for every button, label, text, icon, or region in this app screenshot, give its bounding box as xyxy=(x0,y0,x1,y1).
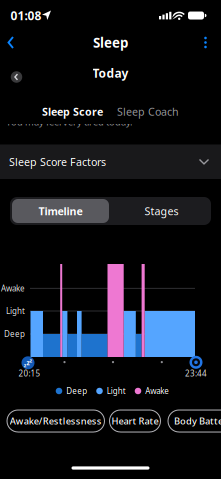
staticText: 23:44 xyxy=(185,368,207,379)
staticText: Sleep Coach xyxy=(117,104,179,119)
staticText: Deep xyxy=(4,329,25,339)
staticText: Timeline xyxy=(38,204,82,218)
staticText: 20:15 xyxy=(18,368,40,379)
button[interactable]: Previous day xyxy=(11,71,22,83)
staticText: Light xyxy=(107,386,126,396)
staticText: z xyxy=(24,362,27,369)
staticText: Awake xyxy=(145,386,169,396)
staticText: Sleep Score xyxy=(42,104,103,119)
staticText: Sleep xyxy=(93,34,128,51)
button[interactable]: Sleep Score Factors xyxy=(0,144,221,179)
button[interactable]: Awake/Restlessness xyxy=(7,410,104,432)
staticText: Awake xyxy=(1,283,25,294)
button[interactable]: Sleep Score xyxy=(27,100,117,122)
button[interactable]: Heart Rate xyxy=(109,410,160,432)
staticText: You may feel very tired today. xyxy=(6,116,133,128)
button[interactable]: Back xyxy=(7,35,21,49)
staticText: Awake/Restlessness xyxy=(10,415,102,427)
staticText: 01:08 xyxy=(10,7,41,23)
staticText: z xyxy=(29,357,32,364)
button[interactable]: Sleep Coach xyxy=(103,100,193,122)
staticText: Sleep Score Factors xyxy=(9,155,106,169)
staticText: Deep xyxy=(66,386,87,396)
staticText: Light xyxy=(6,306,25,316)
button[interactable]: Timeline xyxy=(12,199,109,223)
button[interactable]: More options xyxy=(198,35,212,49)
staticText: Body Battery xyxy=(174,415,221,427)
staticText: Stages xyxy=(144,204,178,218)
button[interactable]: Stages xyxy=(113,199,210,223)
staticText: z xyxy=(27,358,30,367)
button[interactable]: Body Battery xyxy=(168,410,221,432)
staticText: Today xyxy=(92,65,128,81)
staticText: Heart Rate xyxy=(111,415,158,427)
